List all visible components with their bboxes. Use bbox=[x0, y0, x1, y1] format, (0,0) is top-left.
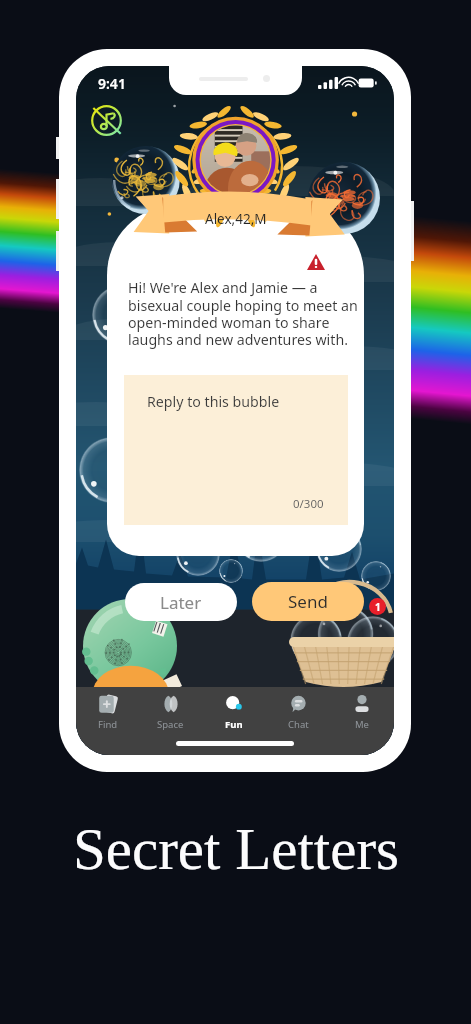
staticText: Find bbox=[98, 718, 118, 731]
staticText: Me bbox=[355, 718, 369, 731]
staticText: Alex,42,M bbox=[205, 210, 267, 228]
staticText: Fun bbox=[225, 718, 243, 731]
button[interactable]: Reply to this bubble bbox=[124, 375, 348, 525]
button[interactable]: Mute background music bbox=[90, 104, 123, 137]
staticText: Later bbox=[160, 591, 202, 614]
button[interactable]: Chat bbox=[266, 693, 330, 731]
button[interactable]: Fun bbox=[202, 693, 266, 731]
staticText: 0/300 bbox=[293, 496, 324, 512]
button[interactable]: Find bbox=[76, 693, 139, 731]
button[interactable]: Me bbox=[330, 693, 394, 731]
staticText: Send bbox=[288, 590, 328, 613]
staticText: Hi! We're Alex and Jamie — a bisexual co… bbox=[128, 278, 358, 349]
button[interactable]: Space bbox=[139, 693, 202, 731]
staticText: 9:41 bbox=[98, 74, 126, 93]
staticText: 1 bbox=[375, 600, 381, 614]
staticText: Secret Letters bbox=[73, 816, 399, 881]
staticText: Chat bbox=[288, 718, 309, 731]
button[interactable]: Send bbox=[252, 582, 364, 621]
staticText: Reply to this bubble bbox=[147, 392, 280, 411]
button[interactable]: Later bbox=[125, 583, 237, 621]
staticText: Space bbox=[157, 718, 184, 731]
